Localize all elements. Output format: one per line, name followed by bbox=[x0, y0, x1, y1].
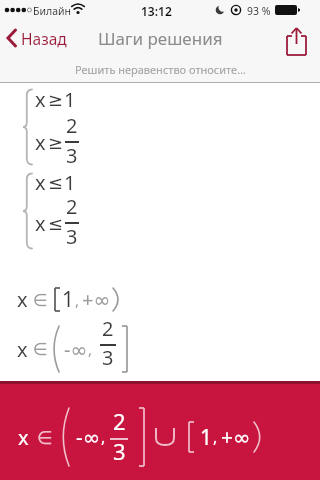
button[interactable] bbox=[0, 384, 320, 480]
staticText: ∈ bbox=[37, 427, 53, 448]
staticText: x bbox=[35, 210, 46, 237]
staticText: +∞ bbox=[82, 286, 111, 313]
staticText: 2 bbox=[66, 193, 78, 220]
staticText: , bbox=[213, 426, 218, 448]
staticText: Билайн bbox=[33, 4, 71, 18]
staticText: +∞ bbox=[221, 423, 251, 452]
staticText: ≥ bbox=[48, 132, 64, 153]
staticText: 3 bbox=[102, 344, 114, 371]
staticText: ≥ bbox=[48, 89, 64, 110]
staticText: 2 bbox=[66, 112, 78, 139]
button[interactable]: Назад bbox=[6, 20, 67, 56]
staticText: 3 bbox=[66, 223, 78, 250]
staticText: 1 bbox=[64, 169, 76, 196]
staticText: 3 bbox=[66, 142, 78, 169]
staticText: 13:12 bbox=[141, 3, 172, 19]
staticText: x bbox=[17, 336, 28, 363]
staticText: x bbox=[17, 286, 28, 313]
staticText: 1 bbox=[64, 86, 76, 113]
staticText: 93 % bbox=[247, 4, 271, 18]
staticText: -∞ bbox=[64, 336, 88, 363]
staticText: , bbox=[75, 290, 80, 310]
button[interactable] bbox=[282, 24, 312, 56]
staticText: x bbox=[18, 424, 29, 451]
staticText: Решить неравенство относите… bbox=[75, 62, 246, 77]
staticText: 1 bbox=[62, 285, 75, 314]
staticText: x bbox=[35, 86, 46, 113]
staticText: ≤ bbox=[48, 172, 64, 193]
staticText: , bbox=[101, 426, 106, 448]
staticText: x bbox=[35, 169, 46, 196]
staticText: ≤ bbox=[48, 213, 64, 234]
staticText: Шаги решения bbox=[98, 27, 223, 50]
staticText: , bbox=[88, 339, 93, 359]
staticText: -∞ bbox=[76, 423, 101, 452]
staticText: 1 bbox=[200, 423, 213, 452]
staticText: x bbox=[35, 129, 46, 156]
staticText: ∈ bbox=[33, 339, 48, 359]
staticText: 2 bbox=[102, 315, 114, 342]
staticText: ∈ bbox=[33, 290, 48, 310]
staticText: 3 bbox=[113, 436, 126, 460]
staticText: Назад bbox=[21, 28, 67, 49]
staticText: 2 bbox=[113, 406, 126, 436]
